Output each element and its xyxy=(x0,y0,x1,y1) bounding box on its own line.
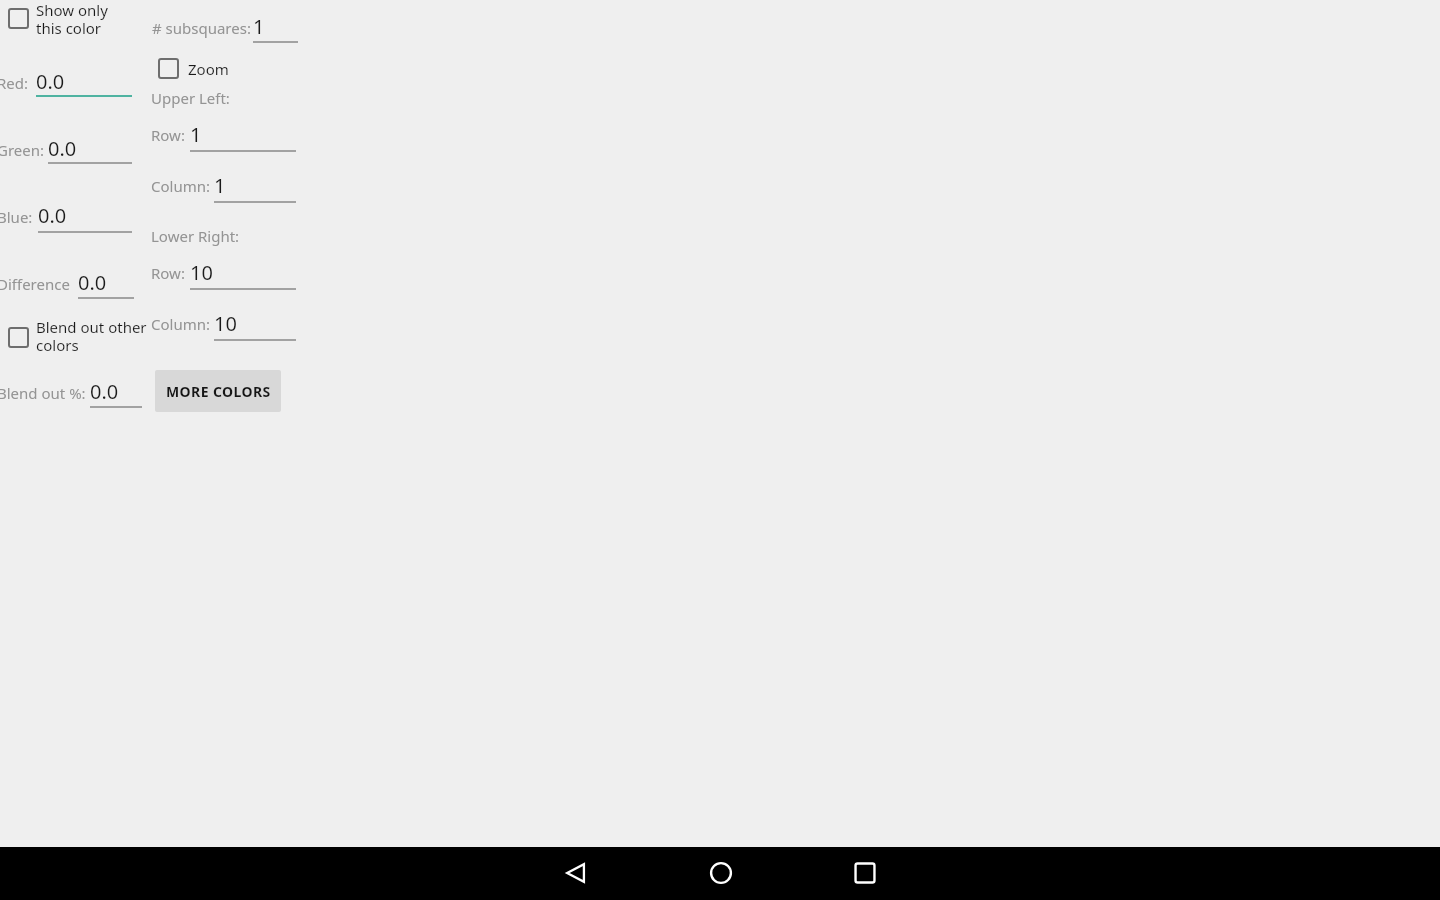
button[interactable]: Blend out other colors xyxy=(36,317,147,356)
button[interactable]: Column xyxy=(214,308,296,343)
staticText: 1 xyxy=(214,172,226,199)
staticText: 10 xyxy=(214,310,237,337)
staticText: 0.0 xyxy=(48,135,77,162)
button[interactable]: Blend out % xyxy=(90,376,142,410)
staticText: 10 xyxy=(190,259,213,286)
button[interactable]: Blue xyxy=(38,200,132,235)
button[interactable]: Zoom xyxy=(188,59,229,79)
staticText: Blue: xyxy=(0,207,33,227)
staticText: Column: xyxy=(151,176,211,196)
button[interactable]: Show only this color xyxy=(36,0,108,39)
staticText: 0.0 xyxy=(90,378,119,405)
staticText: 0.0 xyxy=(36,68,65,95)
staticText: 1 xyxy=(253,13,265,40)
staticText: Row: xyxy=(151,125,185,145)
staticText: Lower Right: xyxy=(151,226,240,246)
button[interactable]: Column xyxy=(214,170,296,205)
staticText: Green: xyxy=(0,140,45,160)
button[interactable]: Home xyxy=(697,849,745,897)
button[interactable]: Blend out other colors xyxy=(8,327,29,348)
staticText: 0.0 xyxy=(78,269,107,296)
button[interactable]: Recent apps xyxy=(841,849,889,897)
staticText: Row: xyxy=(151,263,185,283)
staticText: MORE COLORS xyxy=(166,382,271,401)
staticText: Column: xyxy=(151,314,211,334)
button[interactable]: Back xyxy=(552,849,600,897)
button[interactable]: # subsquares xyxy=(253,11,298,45)
staticText: 0.0 xyxy=(38,202,67,229)
staticText: 1 xyxy=(190,121,202,148)
button[interactable]: Green xyxy=(48,133,132,166)
staticText: Red: xyxy=(0,73,29,93)
button[interactable]: Row xyxy=(190,257,296,292)
button[interactable]: Zoom xyxy=(158,58,179,79)
staticText: Difference xyxy=(0,274,70,294)
staticText: Blend out %: xyxy=(0,383,86,403)
button[interactable]: Show only this color xyxy=(8,8,29,29)
button[interactable]: Difference xyxy=(78,267,134,301)
staticText: Upper Left: xyxy=(151,88,230,108)
button[interactable]: MORE COLORS xyxy=(155,370,281,412)
staticText: # subsquares: xyxy=(152,18,251,38)
button[interactable]: Row xyxy=(190,119,296,154)
button[interactable]: Red xyxy=(36,66,132,99)
